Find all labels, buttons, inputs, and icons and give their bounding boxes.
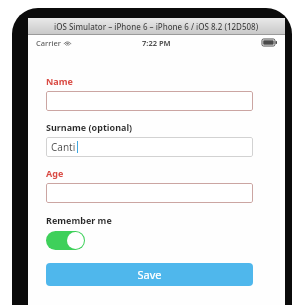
staticText: 7:22 PM	[142, 38, 171, 48]
staticText: Canti	[51, 140, 76, 154]
staticText: Age	[46, 167, 64, 179]
staticText: Remember me	[46, 214, 112, 226]
button[interactable]	[46, 91, 253, 111]
staticText: iOS Simulator – iPhone 6 – iPhone 6 / iO…	[54, 21, 259, 32]
staticText: Surname (optional)	[46, 121, 133, 133]
staticText: Save	[137, 267, 162, 282]
button[interactable]: Remember me toggle, on	[46, 231, 85, 250]
button[interactable]: Canti	[46, 137, 253, 157]
staticText: Name	[46, 75, 73, 87]
button[interactable]	[46, 183, 253, 203]
staticText: Carrier	[36, 38, 61, 48]
button[interactable]: Save	[46, 263, 253, 286]
